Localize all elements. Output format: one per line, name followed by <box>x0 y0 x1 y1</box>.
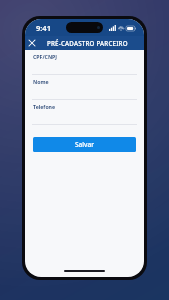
button[interactable]: CPF/CNPJ <box>25 50 144 75</box>
button[interactable]: Telefone <box>25 100 144 125</box>
button[interactable]: Salvar <box>33 137 136 152</box>
button[interactable]: Nome <box>25 75 144 100</box>
staticText: Telefone <box>33 103 56 110</box>
staticText: CPF/CNPJ <box>33 53 58 60</box>
staticText: Nome <box>33 78 49 85</box>
button[interactable]: Fechar <box>25 36 39 50</box>
staticText: PRÉ-CADASTRO PARCEIRO <box>47 39 128 47</box>
staticText: 9:41 <box>36 23 51 33</box>
staticText: Salvar <box>75 140 94 149</box>
